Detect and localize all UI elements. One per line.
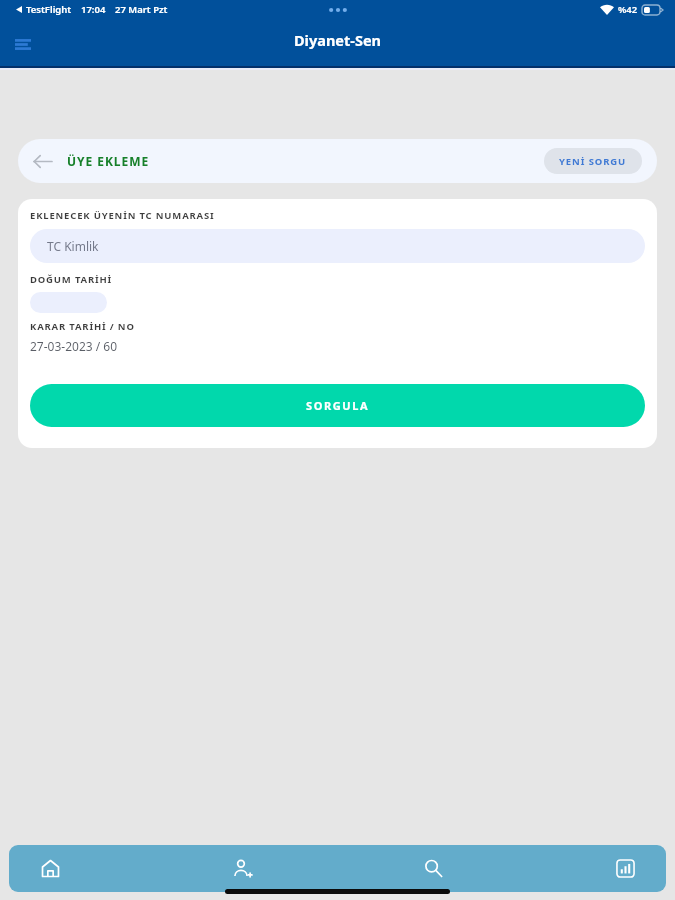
staticText: 17:04	[81, 3, 106, 16]
button[interactable]: Add member	[222, 845, 262, 892]
staticText: 27-03-2023 / 60	[30, 338, 118, 354]
staticText: SORGULA	[306, 398, 370, 413]
staticText: %42	[618, 3, 638, 16]
button[interactable]: Menu	[6, 27, 40, 61]
button[interactable]: SORGULA	[30, 384, 645, 427]
staticText: TestFlight	[26, 3, 72, 16]
button[interactable]: Reports	[605, 845, 645, 892]
staticText: TC Kimlik	[47, 238, 99, 254]
staticText: KARAR TARİHİ / NO	[30, 320, 135, 333]
staticText: YENİ SORGU	[559, 155, 627, 168]
staticText: ÜYE EKLEME	[67, 153, 150, 169]
button[interactable]	[30, 292, 107, 313]
staticText: DOĞUM TARİHİ	[30, 273, 113, 286]
button[interactable]: Home	[30, 845, 70, 892]
staticText: Diyanet-Sen	[294, 30, 381, 50]
button[interactable]: Back	[29, 148, 55, 174]
staticText: 27 Mart Pzt	[115, 3, 168, 16]
button[interactable]: YENİ SORGU	[544, 148, 642, 174]
button[interactable]: TC Kimlik	[30, 229, 645, 263]
button[interactable]: Search	[413, 845, 453, 892]
staticText: EKLENECEK ÜYENİN TC NUMARASI	[30, 209, 215, 222]
